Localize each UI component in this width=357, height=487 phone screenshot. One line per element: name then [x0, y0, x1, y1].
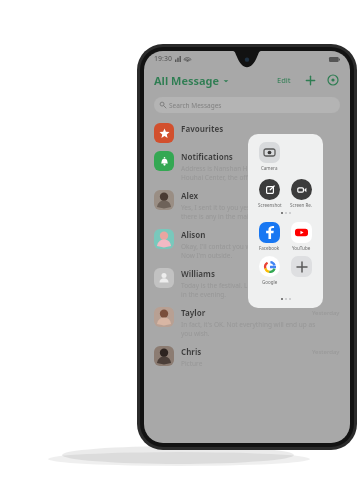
button[interactable]: Camera: [254, 142, 285, 171]
button[interactable]: Alex: [144, 186, 350, 225]
staticText: in the evening.: [181, 290, 227, 299]
staticText: Favourites: [181, 123, 224, 134]
button[interactable]: Williams: [144, 264, 350, 303]
button[interactable]: Chris: [144, 342, 350, 372]
button[interactable]: Facebook: [254, 222, 285, 251]
button[interactable]: Search Messages: [154, 97, 340, 113]
staticText: Edit: [277, 75, 291, 85]
staticText: YouTube: [292, 245, 311, 251]
button[interactable]: YouTube: [285, 222, 317, 251]
button[interactable]: Google: [254, 256, 285, 285]
staticText: Now I'm outside.: [181, 251, 233, 260]
staticText: Yes, I sent it to you yest: [181, 203, 253, 212]
staticText: Screenshot: [258, 202, 282, 208]
staticText: Alex: [181, 190, 340, 201]
staticText: Notifications: [181, 151, 233, 162]
staticText: Picture: [181, 359, 203, 368]
button[interactable]: Taylor: [144, 303, 350, 342]
button[interactable]: All Message: [154, 73, 229, 88]
button[interactable]: Add shortcut: [285, 256, 317, 277]
staticText: there is any in the mailb: [181, 212, 255, 221]
staticText: 19:30: [154, 54, 172, 64]
staticText: Chris: [181, 346, 312, 357]
staticText: Taylor: [181, 307, 312, 318]
staticText: Houhai Center, the offic: [181, 173, 253, 182]
staticText: Facebook: [259, 245, 280, 251]
staticText: Yesterday: [312, 348, 340, 356]
staticText: In fact, it's OK. Not everything will en…: [181, 320, 316, 329]
button[interactable]: Screenshot: [254, 179, 285, 208]
staticText: All Message: [154, 73, 220, 88]
button[interactable]: Screen Re.: [285, 179, 317, 208]
button[interactable]: Notifications: [144, 147, 350, 186]
staticText: Screen Re.: [290, 202, 312, 208]
button[interactable]: New message: [303, 73, 317, 87]
staticText: Google: [262, 279, 278, 285]
staticText: Alison: [181, 229, 340, 240]
button[interactable]: Favourites: [144, 119, 350, 147]
staticText: Yesterday: [312, 309, 340, 317]
button[interactable]: Settings: [326, 73, 340, 87]
staticText: Today is the festival. Le: [181, 281, 252, 290]
button[interactable]: Alison: [144, 225, 350, 264]
staticText: Williams: [181, 268, 340, 279]
staticText: Camera: [261, 165, 278, 171]
staticText: you wish.: [181, 329, 210, 338]
staticText: Okay, I'll contact you wh: [181, 242, 255, 251]
staticText: Address is Nanshan Ha: [181, 164, 252, 173]
button[interactable]: Edit: [274, 75, 294, 85]
staticText: Search Messages: [169, 101, 222, 110]
